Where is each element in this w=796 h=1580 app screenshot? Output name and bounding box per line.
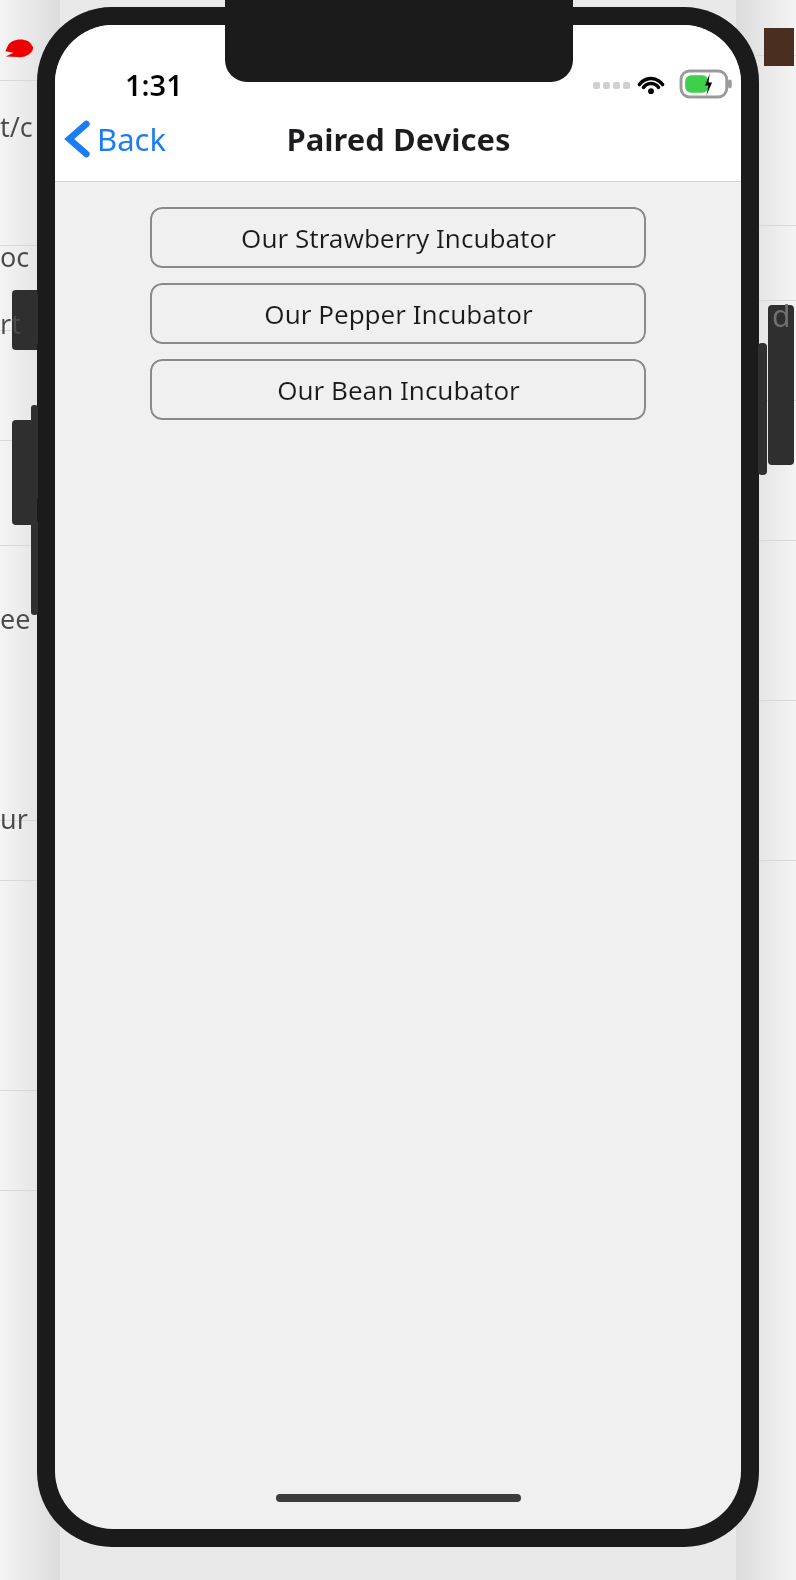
- staticText: Our Pepper Incubator: [264, 296, 533, 331]
- button[interactable]: Our Bean Incubator: [150, 359, 646, 420]
- staticText: d: [772, 295, 791, 336]
- staticText: Our Bean Incubator: [277, 372, 520, 407]
- staticText: 1:31: [125, 65, 183, 104]
- staticText: Our Strawberry Incubator: [241, 220, 556, 255]
- staticText: t/c: [0, 108, 33, 145]
- staticText: oc: [0, 238, 30, 275]
- button[interactable]: Back: [55, 112, 178, 166]
- staticText: Back: [97, 118, 166, 160]
- button[interactable]: Our Strawberry Incubator: [150, 207, 646, 268]
- staticText: ee: [0, 600, 31, 637]
- button[interactable]: Our Pepper Incubator: [150, 283, 646, 344]
- staticText: rt: [0, 305, 21, 342]
- staticText: ur: [0, 800, 28, 837]
- staticText: Paired Devices: [286, 118, 511, 160]
